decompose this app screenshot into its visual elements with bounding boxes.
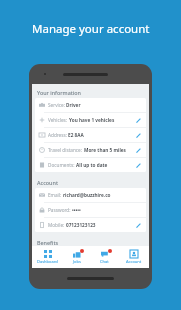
button[interactable]: Address: <box>35 128 146 142</box>
staticText: ••••• <box>72 207 81 213</box>
button[interactable]: Chat <box>91 246 118 268</box>
staticText: Mobile: <box>48 222 65 228</box>
staticText: Service: <box>48 102 65 108</box>
staticText: Vehicles: <box>48 117 68 123</box>
staticText: All up to date <box>76 162 108 168</box>
staticText: Your information <box>37 89 81 96</box>
staticText: Documents: <box>48 162 75 168</box>
button[interactable]: Documents: <box>35 158 146 172</box>
button[interactable]: Edit Documents: <box>134 161 142 169</box>
staticText: Password: <box>48 207 71 213</box>
staticText: Travel distance: <box>48 147 83 153</box>
staticText: 07123123123 <box>66 222 96 228</box>
button[interactable]: Edit Mobile: <box>134 221 142 229</box>
staticText: E2 8AA <box>68 132 84 138</box>
button[interactable]: Edit Address: <box>134 131 142 139</box>
button[interactable]: Jobs <box>63 246 90 268</box>
staticText: richard@buzzhire.co <box>63 192 111 198</box>
button[interactable]: Edit Vehicles: <box>134 116 142 124</box>
staticText: Chat <box>100 259 109 264</box>
button[interactable]: Dashboard <box>34 246 61 268</box>
staticText: Email: <box>48 192 62 198</box>
staticText: You have 1 vehicles <box>69 117 115 123</box>
staticText: More than 5 miles <box>84 147 126 153</box>
staticText: Jobs <box>73 259 81 264</box>
button[interactable]: Email: <box>35 188 146 202</box>
button[interactable]: Password: <box>35 203 146 217</box>
staticText: Driver <box>66 102 81 108</box>
staticText: Account <box>126 259 142 264</box>
button[interactable]: Vehicles: <box>35 113 146 127</box>
button[interactable]: Travel distance: <box>35 143 146 157</box>
staticText: Account <box>37 179 58 186</box>
button[interactable]: Mobile: <box>35 218 146 232</box>
staticText: Benefits <box>37 239 59 246</box>
staticText: Dashboard <box>37 259 58 264</box>
button[interactable]: Edit Travel distance: <box>134 146 142 154</box>
staticText: Address: <box>48 132 67 138</box>
staticText: Manage your account <box>32 21 150 37</box>
button[interactable]: Account <box>120 246 147 268</box>
button[interactable]: Service: <box>35 98 146 112</box>
